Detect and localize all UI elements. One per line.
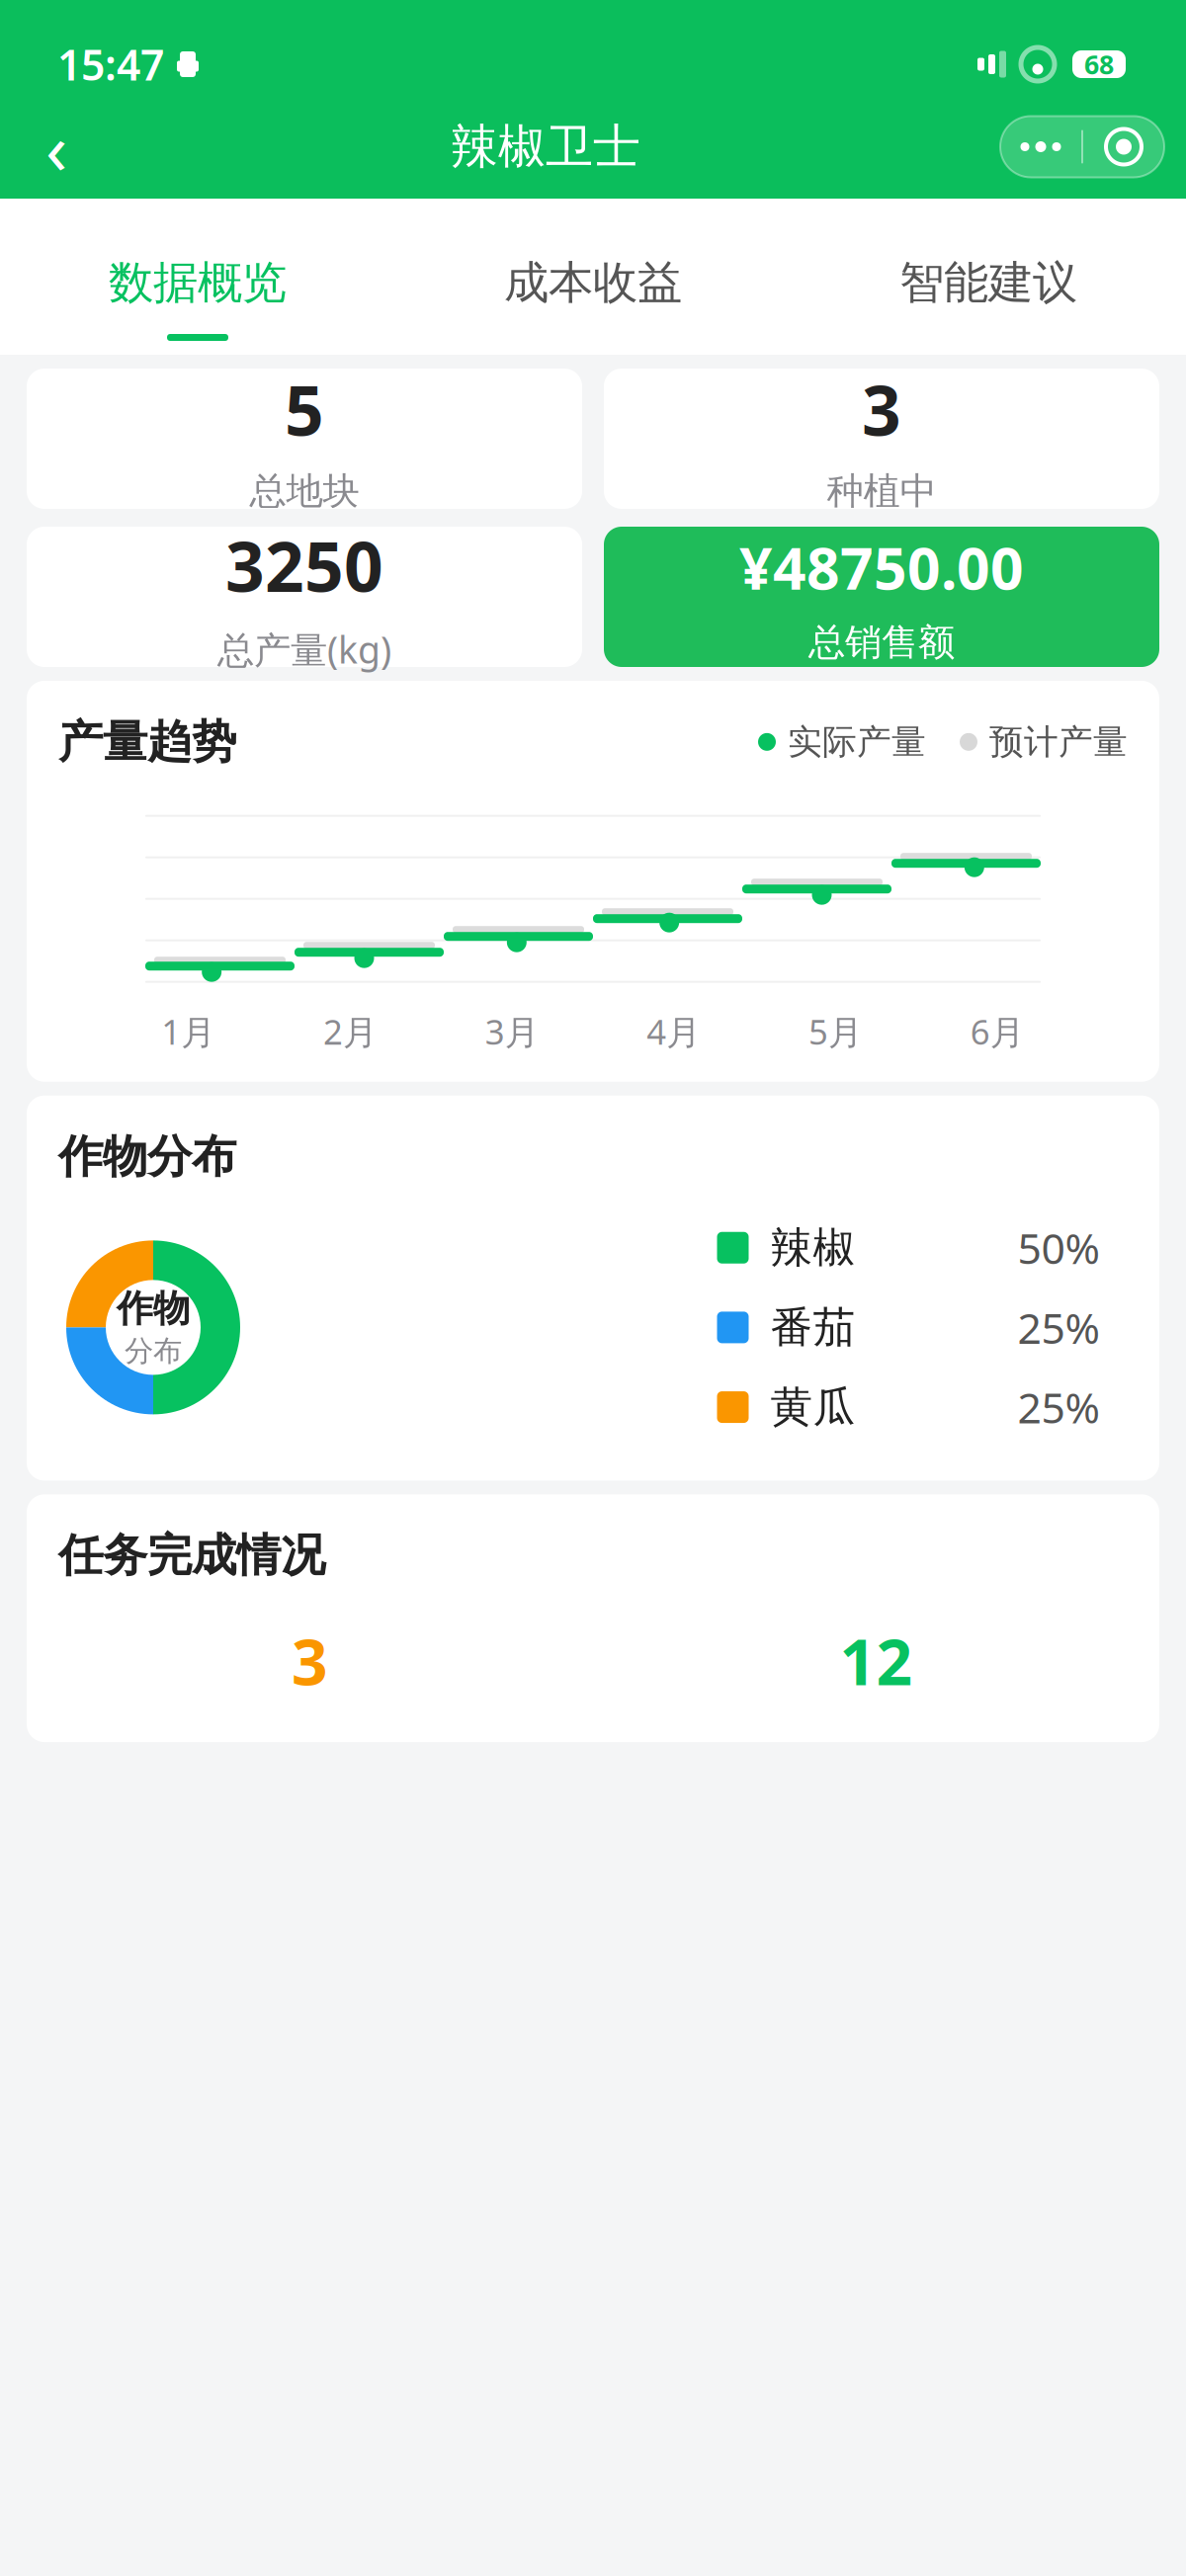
staticText: 5 — [285, 364, 324, 455]
staticText: ¥48750.00 — [739, 529, 1024, 606]
button[interactable]: Back — [22, 112, 91, 181]
staticText: 作物分布 — [58, 1129, 236, 1184]
staticText: 25% — [1017, 1299, 1100, 1355]
button[interactable]: 3250 — [27, 527, 582, 667]
staticText: 12 — [840, 1619, 913, 1703]
staticText: 成本收益 — [504, 255, 682, 310]
button[interactable]: 智能建议 — [791, 199, 1186, 355]
staticText: 50% — [1017, 1220, 1100, 1276]
staticText: 3250 — [225, 520, 383, 611]
staticText: 辣椒卫士 — [451, 118, 640, 176]
staticText: 智能建议 — [899, 255, 1077, 310]
staticText: 种植中 — [827, 468, 936, 514]
staticText: 辣椒 — [770, 1222, 855, 1274]
staticText: 黄瓜 — [770, 1381, 855, 1433]
staticText: 3月 — [485, 1009, 539, 1054]
button[interactable]: Close — [1083, 116, 1164, 177]
button[interactable]: 数据概览 — [0, 199, 395, 355]
staticText: 2月 — [323, 1009, 378, 1054]
button[interactable]: More — [1000, 116, 1081, 177]
staticText: 实际产量 — [788, 721, 926, 763]
button[interactable]: 成本收益 — [395, 199, 791, 355]
button[interactable]: ¥48750.00 — [604, 527, 1159, 667]
staticText: 6月 — [970, 1009, 1025, 1054]
staticText: 数据概览 — [109, 255, 287, 310]
staticText: 总地块 — [250, 468, 359, 514]
staticText: 3 — [862, 364, 901, 455]
staticText: 总产量(kg) — [217, 625, 391, 674]
staticText: 4月 — [647, 1009, 701, 1054]
staticText: 任务完成情况 — [58, 1528, 325, 1583]
staticText: 产量趋势 — [58, 714, 236, 769]
staticText: ‹ — [45, 100, 67, 194]
staticText: 分布 — [125, 1333, 182, 1369]
staticText: 68 — [1084, 47, 1114, 82]
staticText: 3 — [292, 1619, 328, 1703]
staticText: 总销售额 — [808, 620, 955, 665]
staticText: 25% — [1017, 1379, 1100, 1435]
staticText: 5月 — [808, 1009, 863, 1054]
staticText: 番茄 — [770, 1302, 855, 1353]
button[interactable]: 5 — [27, 369, 582, 509]
staticText: 预计产量 — [989, 721, 1128, 763]
button[interactable]: 3 — [604, 369, 1159, 509]
staticText: 15:47 — [57, 36, 164, 92]
staticText: 作物 — [117, 1286, 190, 1331]
staticText: 1月 — [161, 1009, 216, 1054]
